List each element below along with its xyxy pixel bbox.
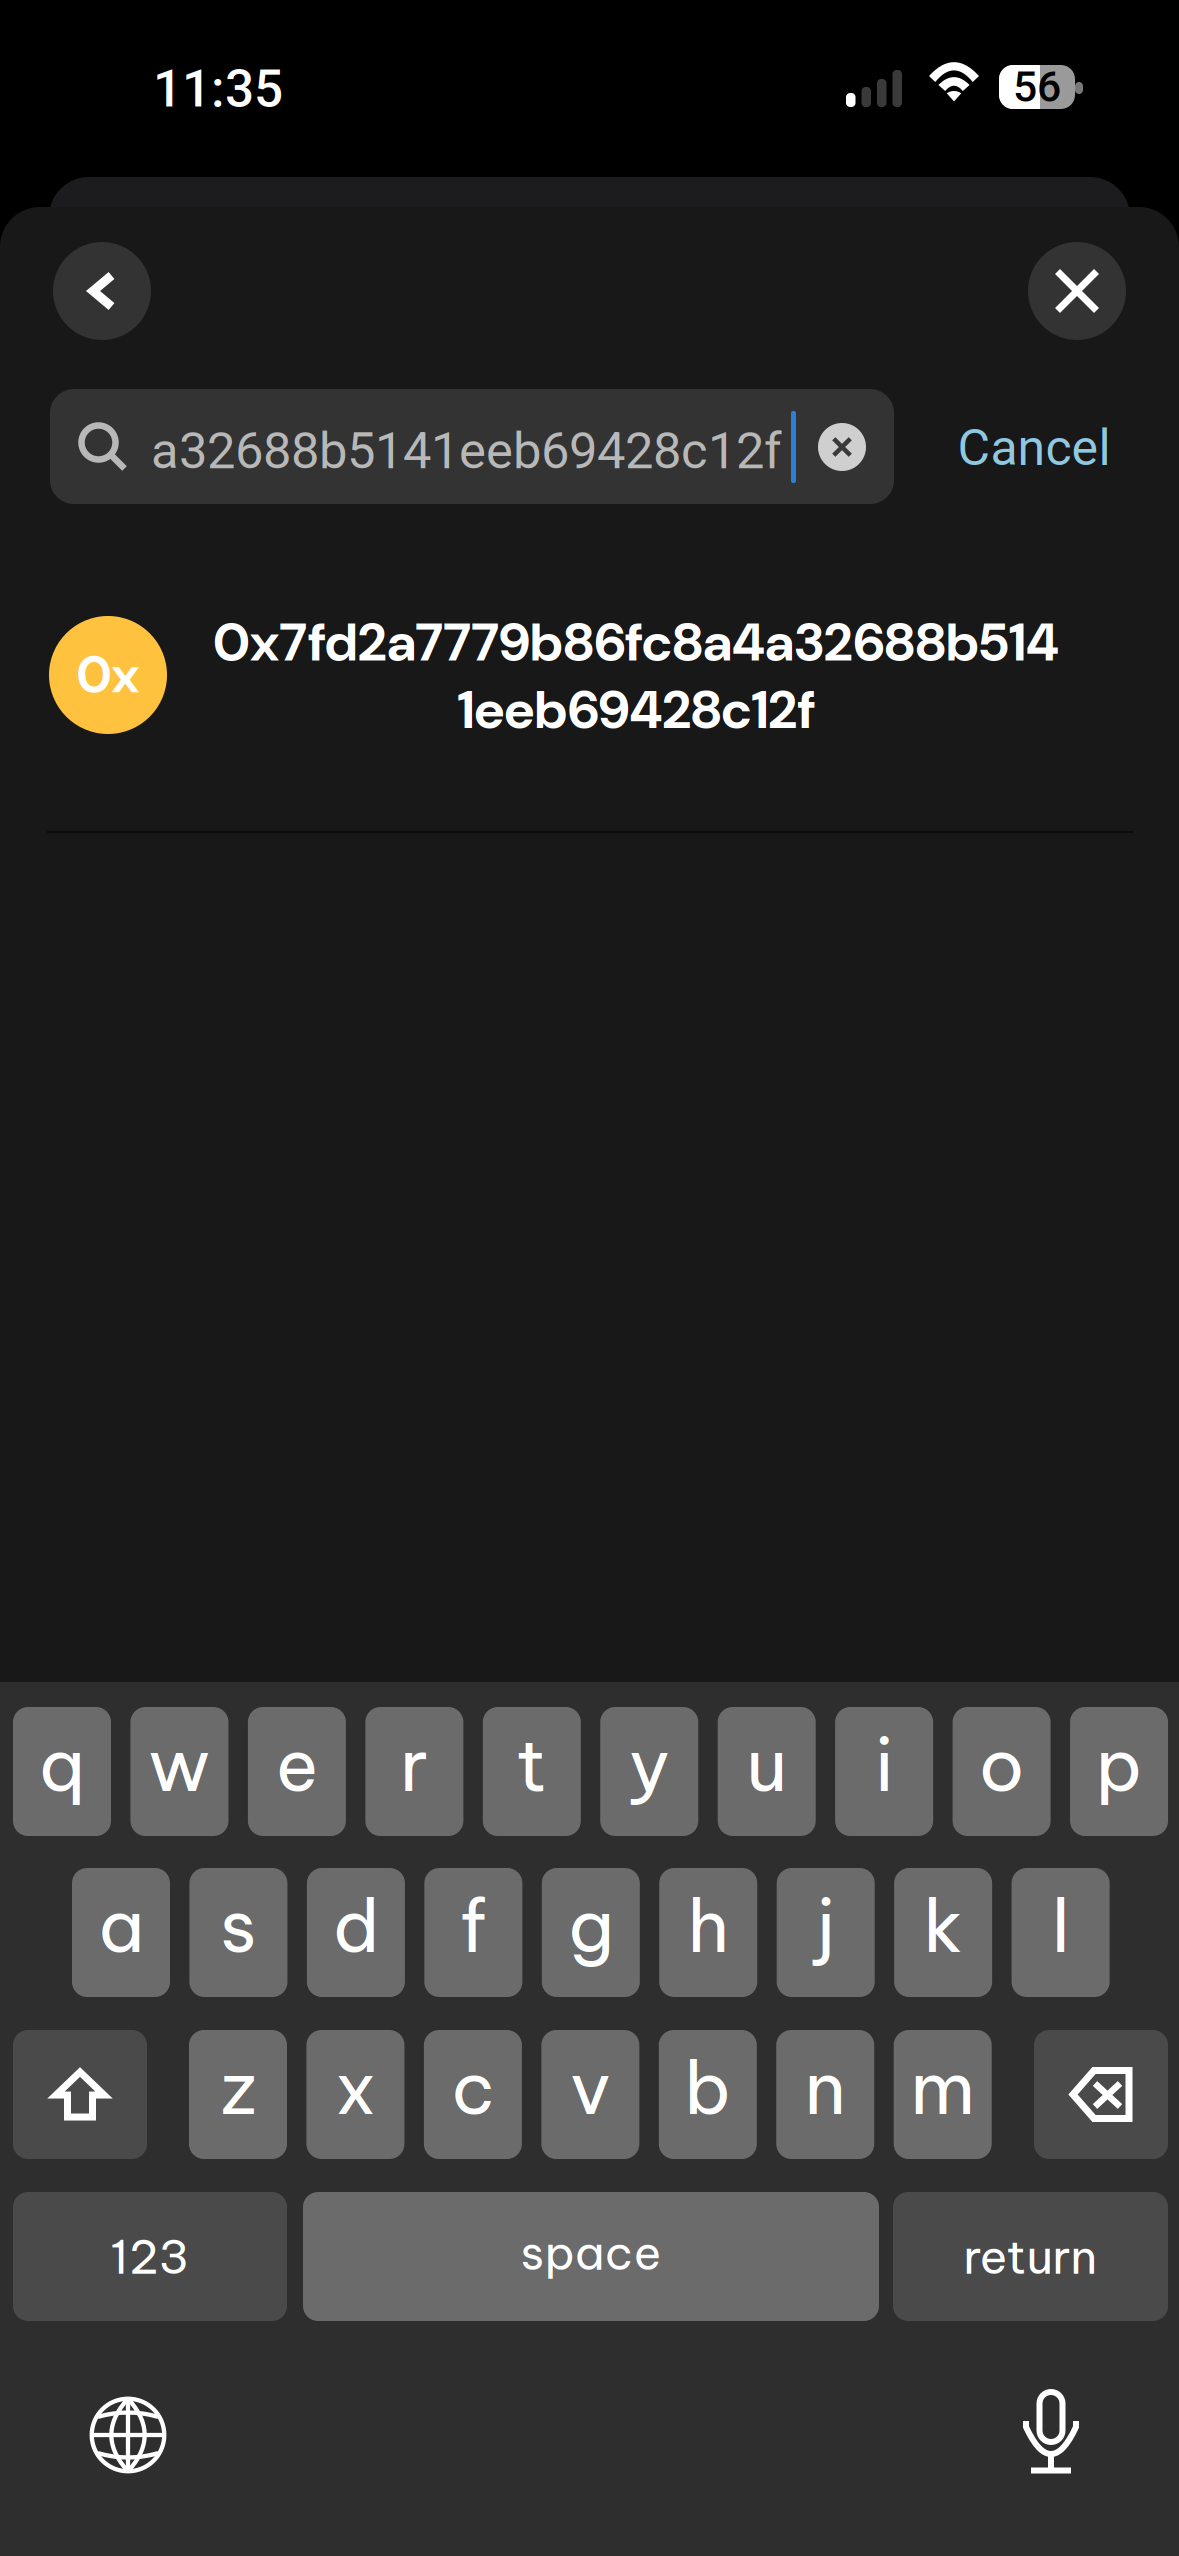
staticText: d xyxy=(332,1880,379,1971)
staticText: return xyxy=(963,2227,1097,2286)
staticText: p xyxy=(1095,1719,1142,1810)
button[interactable]: n xyxy=(776,2030,874,2159)
button[interactable]: r xyxy=(365,1707,463,1836)
staticText: 56 xyxy=(1013,62,1061,112)
button[interactable]: c xyxy=(424,2030,522,2159)
button[interactable]: Shift xyxy=(13,2030,147,2159)
staticText: j xyxy=(816,1880,836,1971)
staticText: space xyxy=(520,2223,661,2282)
staticText: i xyxy=(875,1719,894,1810)
button[interactable]: i xyxy=(835,1707,933,1836)
button[interactable]: o xyxy=(953,1707,1051,1836)
staticText: r xyxy=(400,1719,428,1810)
button[interactable]: j xyxy=(777,1868,875,1997)
button[interactable]: w xyxy=(130,1707,228,1836)
staticText: o xyxy=(979,1719,1025,1810)
staticText: f xyxy=(459,1880,487,1971)
button[interactable]: Delete xyxy=(1034,2030,1168,2159)
button[interactable]: Cancel xyxy=(954,413,1114,483)
button[interactable]: s xyxy=(189,1868,287,1997)
button[interactable]: m xyxy=(894,2030,992,2159)
button[interactable]: f xyxy=(424,1868,522,1997)
staticText: n xyxy=(805,2042,846,2133)
button[interactable]: q xyxy=(13,1707,111,1836)
button[interactable]: y xyxy=(600,1707,698,1836)
staticText: 0x xyxy=(76,642,139,708)
button[interactable]: a xyxy=(72,1868,170,1997)
staticText: s xyxy=(220,1880,257,1971)
button[interactable]: space xyxy=(303,2192,879,2321)
staticText: q xyxy=(38,1719,85,1810)
staticText: c xyxy=(451,2042,495,2133)
button[interactable]: e xyxy=(248,1707,346,1836)
staticText: z xyxy=(220,2042,256,2133)
button[interactable]: Change keyboard xyxy=(89,2396,167,2474)
staticText: w xyxy=(148,1719,211,1810)
staticText: 1eeb69428c12f xyxy=(457,675,814,744)
button[interactable]: x xyxy=(306,2030,404,2159)
staticText: a xyxy=(98,1880,144,1971)
button[interactable]: Back xyxy=(53,242,151,340)
button[interactable]: Dictate xyxy=(1023,2389,1079,2475)
button[interactable]: Clear text xyxy=(818,423,866,471)
button[interactable]: 0x xyxy=(0,600,1179,830)
staticText: t xyxy=(516,1719,547,1810)
button[interactable]: 123 xyxy=(13,2192,287,2321)
staticText: g xyxy=(568,1880,614,1971)
staticText: 11:35 xyxy=(153,59,283,119)
staticText: k xyxy=(923,1880,963,1971)
button[interactable]: return xyxy=(893,2192,1168,2321)
staticText: e xyxy=(275,1719,318,1810)
button[interactable]: l xyxy=(1012,1868,1110,1997)
button[interactable]: t xyxy=(483,1707,581,1836)
button[interactable]: Close xyxy=(1028,242,1126,340)
button[interactable]: b xyxy=(659,2030,757,2159)
button[interactable]: p xyxy=(1070,1707,1168,1836)
button[interactable]: z xyxy=(189,2030,287,2159)
button[interactable]: k xyxy=(894,1868,992,1997)
button[interactable]: h xyxy=(659,1868,757,1997)
staticText: m xyxy=(911,2042,975,2133)
button[interactable]: g xyxy=(542,1868,640,1997)
staticText: u xyxy=(746,1719,787,1810)
staticText: h xyxy=(687,1880,729,1971)
staticText: 0x7fd2a7779b86fc8a4a32688b514 xyxy=(213,608,1059,677)
staticText: y xyxy=(628,1719,670,1810)
staticText: l xyxy=(1052,1880,1070,1971)
staticText: b xyxy=(684,2042,731,2133)
button[interactable]: d xyxy=(307,1868,405,1997)
staticText: 123 xyxy=(110,2227,189,2286)
staticText: v xyxy=(570,2042,611,2133)
button[interactable]: u xyxy=(718,1707,816,1836)
staticText: x xyxy=(335,2042,375,2133)
staticText: a32688b5141eeb69428c12f xyxy=(151,421,782,481)
staticText: Cancel xyxy=(957,419,1110,477)
button[interactable]: v xyxy=(541,2030,639,2159)
